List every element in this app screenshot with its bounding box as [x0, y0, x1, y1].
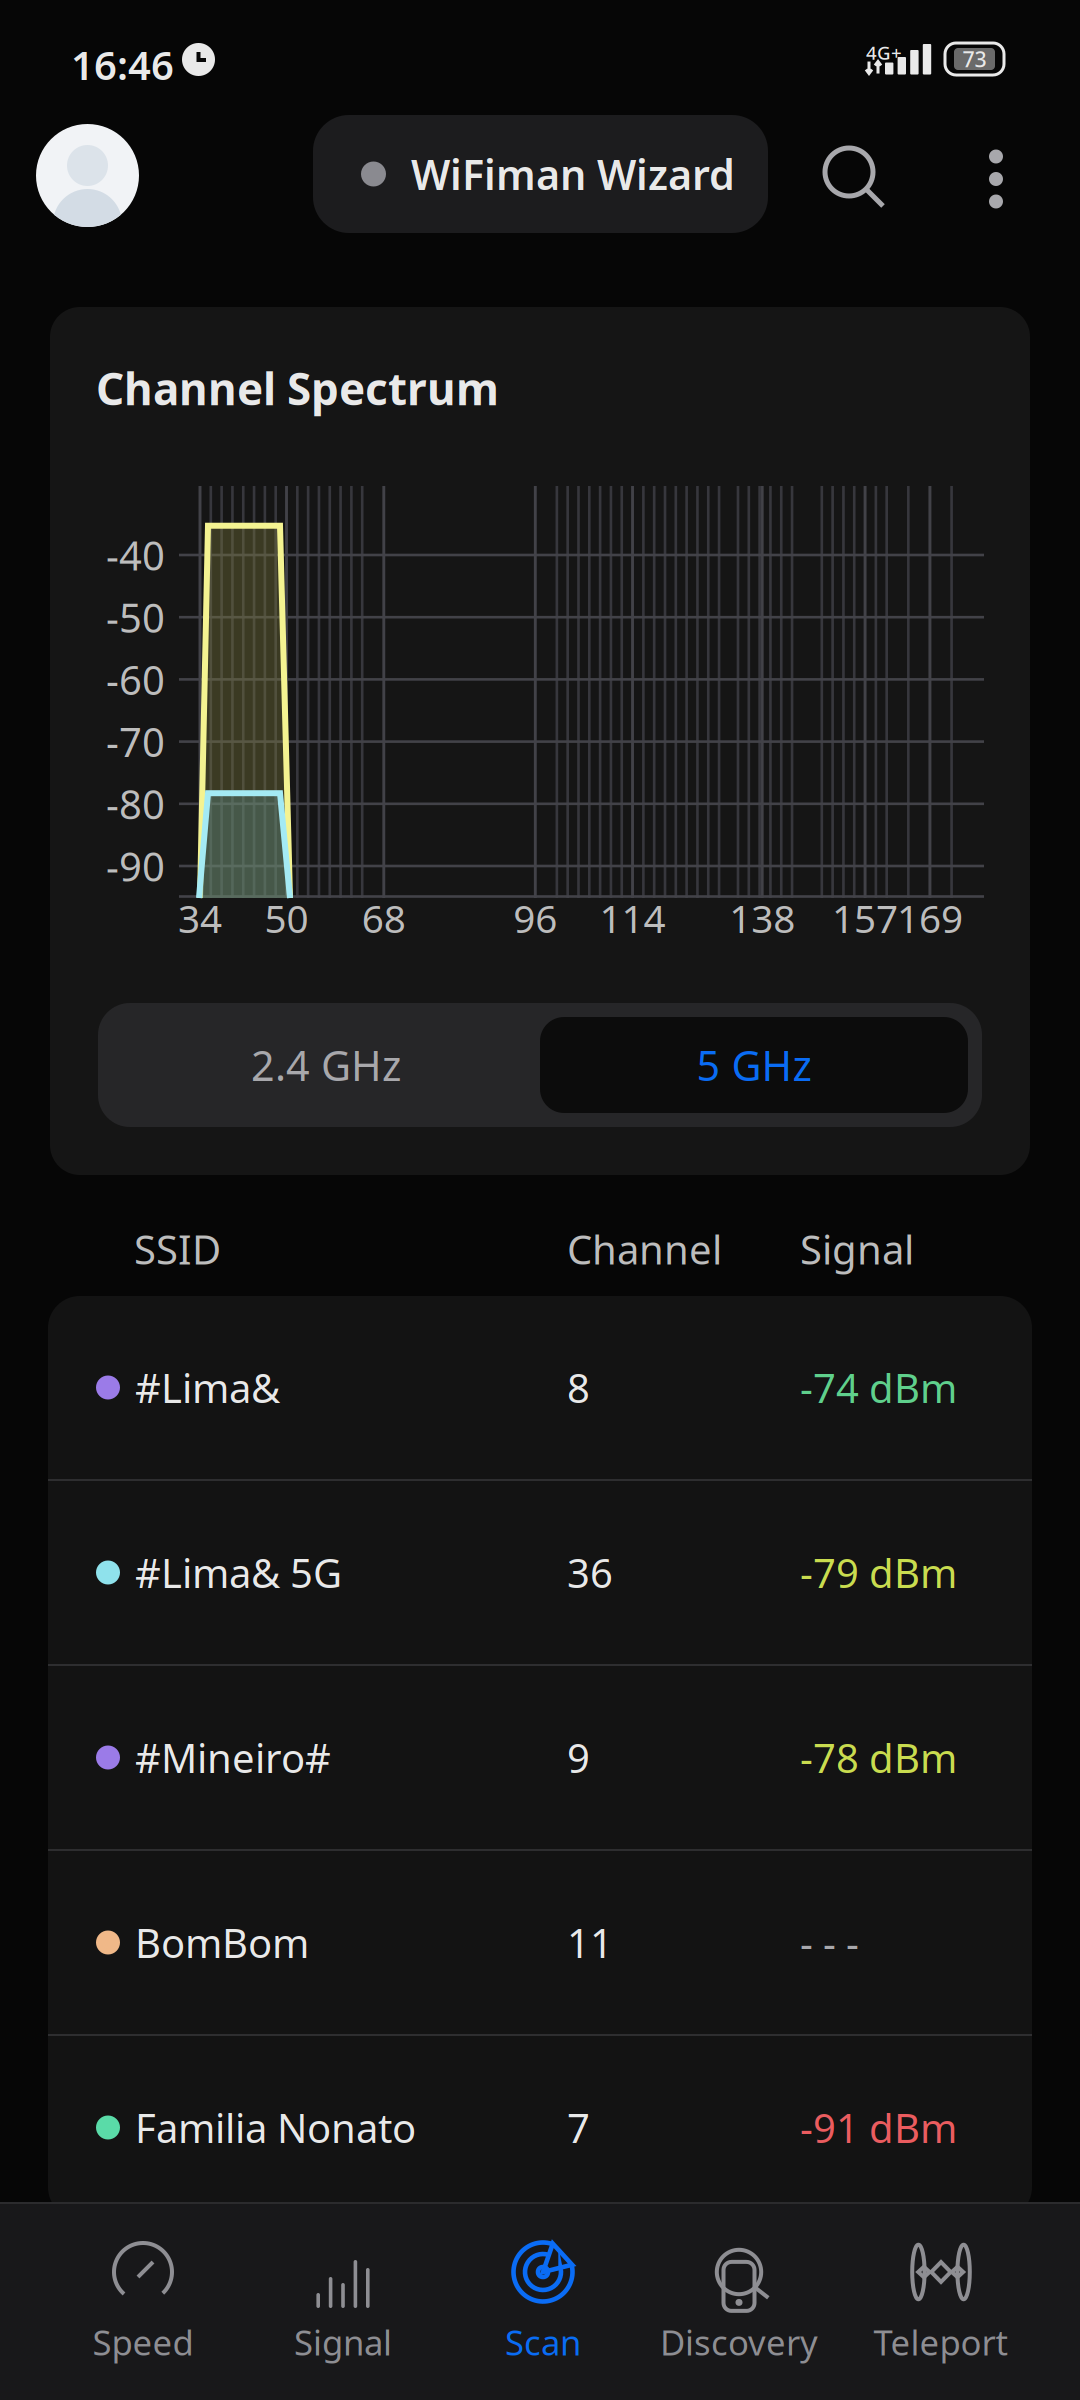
staticText: -90 — [106, 839, 165, 892]
staticText: #Lima& — [135, 1361, 280, 1414]
staticText: -79 dBm — [800, 1546, 957, 1599]
staticText: 68 — [362, 892, 406, 944]
staticText: -80 — [106, 777, 165, 830]
button[interactable]: Speed — [45, 2224, 241, 2384]
staticText: 5 GHz — [696, 1038, 811, 1092]
staticText: 138 — [729, 892, 795, 944]
staticText: Teleport — [873, 2319, 1008, 2365]
staticText: 34 — [178, 892, 222, 944]
staticText: 96 — [513, 892, 557, 944]
button[interactable]: Discovery — [641, 2224, 837, 2384]
staticText: Signal — [800, 1222, 914, 1275]
staticText: Discovery — [660, 2319, 818, 2365]
staticText: 4G+ — [866, 40, 902, 65]
staticText: 157 — [832, 892, 898, 944]
staticText: -60 — [106, 653, 165, 706]
staticText: 50 — [264, 892, 308, 944]
staticText: SSID — [134, 1222, 221, 1275]
staticText: #Mineiro# — [135, 1731, 331, 1784]
staticText: 36 — [567, 1546, 613, 1599]
button[interactable]: BomBom — [48, 1851, 1032, 2034]
staticText: -50 — [106, 591, 165, 644]
staticText: 169 — [897, 892, 963, 944]
staticText: 11 — [567, 1916, 613, 1969]
button[interactable]: Familia Nonato — [48, 2036, 1032, 2219]
button[interactable]: More options — [966, 134, 1026, 224]
button[interactable]: Account — [36, 124, 139, 227]
staticText: BomBom — [135, 1916, 309, 1969]
staticText: -91 dBm — [800, 2101, 957, 2154]
staticText: 73 — [962, 45, 986, 73]
button[interactable]: #Mineiro# — [48, 1666, 1032, 1849]
button[interactable]: Search — [821, 144, 891, 214]
staticText: 114 — [600, 892, 666, 944]
staticText: 16:46 — [71, 38, 174, 91]
staticText: #Lima& 5G — [135, 1546, 342, 1599]
button[interactable]: Teleport — [843, 2224, 1039, 2384]
button[interactable]: #Lima& 5G — [48, 1481, 1032, 1664]
staticText: WiFiman Wizard — [411, 147, 735, 201]
button[interactable]: Signal — [245, 2224, 441, 2384]
staticText: - - - — [800, 1916, 859, 1969]
staticText: -40 — [106, 528, 165, 581]
staticText: Speed — [92, 2319, 193, 2365]
staticText: Channel — [567, 1222, 722, 1275]
staticText: -70 — [106, 715, 165, 768]
button[interactable]: WiFiman Wizard — [313, 115, 768, 233]
staticText: Familia Nonato — [135, 2101, 416, 2154]
staticText: 9 — [567, 1731, 590, 1784]
staticText: Signal — [294, 2319, 392, 2365]
button[interactable]: 5 GHz — [540, 1017, 968, 1113]
button[interactable]: #Lima& — [48, 1296, 1032, 1479]
staticText: 8 — [567, 1361, 590, 1414]
staticText: Channel Spectrum — [96, 359, 499, 417]
staticText: -74 dBm — [800, 1361, 957, 1414]
staticText: -78 dBm — [800, 1731, 957, 1784]
staticText: Scan — [505, 2319, 581, 2365]
button[interactable]: Scan — [445, 2224, 641, 2384]
staticText: 2.4 GHz — [251, 1038, 401, 1092]
button[interactable]: 2.4 GHz — [112, 1017, 540, 1113]
staticText: 7 — [567, 2101, 590, 2154]
